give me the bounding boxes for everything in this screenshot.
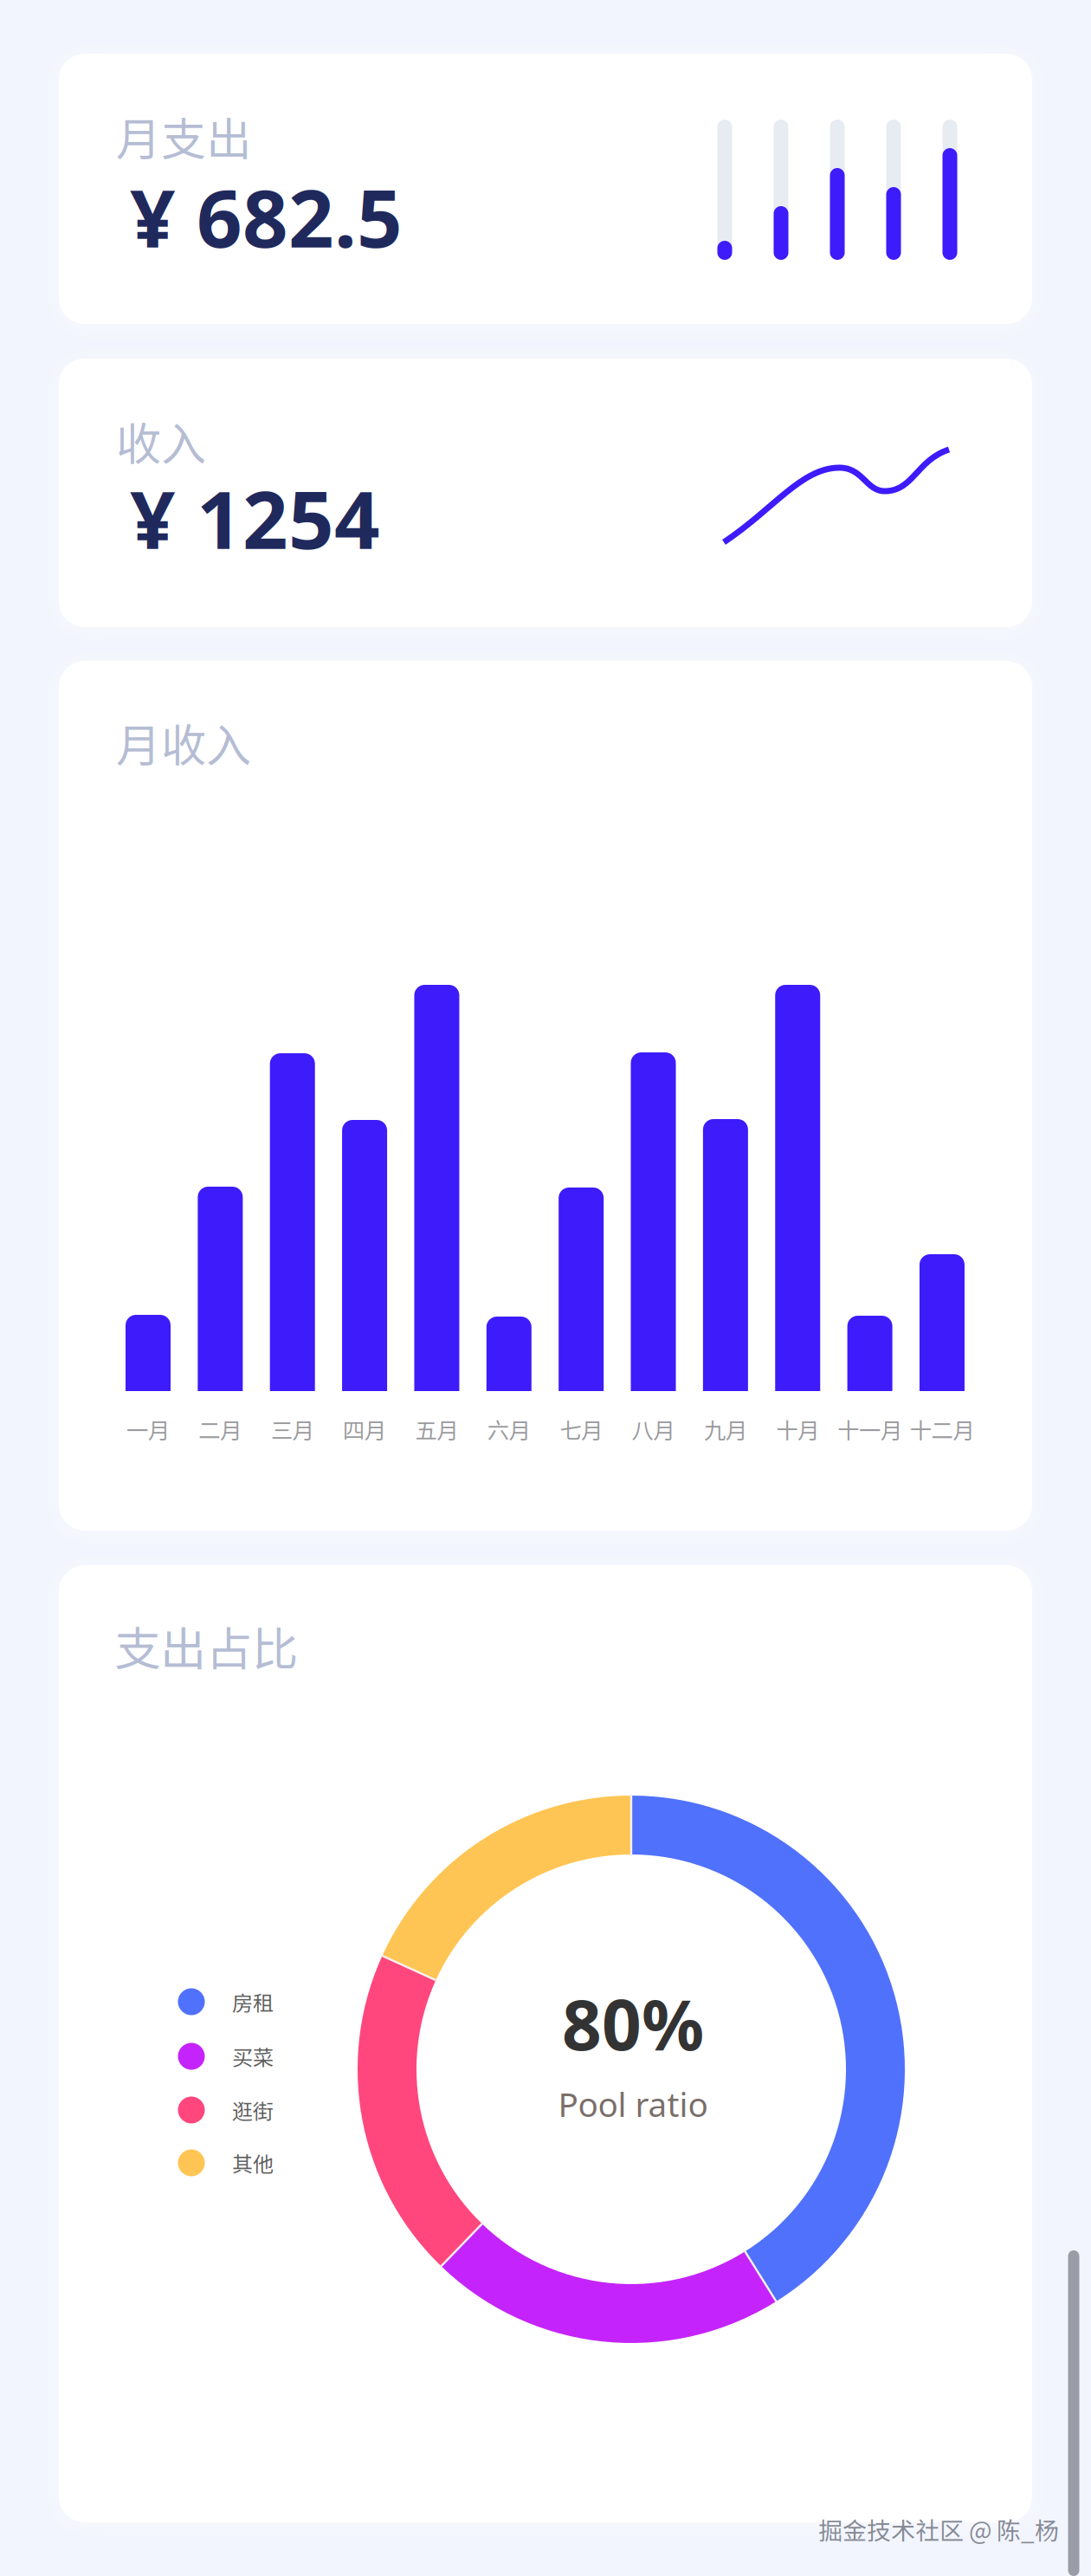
button[interactable]: 收入 ¥ 1254 <box>59 359 1032 627</box>
staticText: 收入 <box>116 408 206 474</box>
staticText: 逛街 <box>232 2095 274 2125</box>
staticText: 80% <box>562 1977 704 2069</box>
staticText: 九月 <box>704 1413 747 1445</box>
staticText: 买菜 <box>232 2041 274 2071</box>
button[interactable]: 支出占比 <box>59 1565 1032 2522</box>
staticText: ¥ 682.5 <box>130 164 403 269</box>
staticText: 十一月 <box>837 1413 902 1445</box>
staticText: 一月 <box>126 1413 170 1445</box>
staticText: Pool ratio <box>558 2082 708 2126</box>
staticText: 三月 <box>271 1413 314 1445</box>
staticText: 二月 <box>199 1413 242 1445</box>
staticText: 掘金技术社区 @ 陈_杨 <box>818 2512 1059 2547</box>
staticText: 六月 <box>487 1413 531 1445</box>
staticText: 四月 <box>343 1413 386 1445</box>
staticText: ¥ 1254 <box>130 465 380 571</box>
staticText: 月收入 <box>116 710 251 775</box>
staticText: 七月 <box>560 1413 603 1445</box>
staticText: 月支出 <box>116 103 251 169</box>
staticText: 五月 <box>415 1413 458 1445</box>
staticText: 十月 <box>776 1413 819 1445</box>
button[interactable]: 月支出 ¥ 682.5 <box>59 54 1032 324</box>
staticText: 支出占比 <box>114 1612 298 1679</box>
button[interactable]: 月收入 <box>59 661 1032 1531</box>
staticText: 其他 <box>232 2148 274 2178</box>
staticText: 八月 <box>632 1413 675 1445</box>
staticText: 十二月 <box>910 1413 975 1445</box>
staticText: 房租 <box>232 1987 274 2017</box>
